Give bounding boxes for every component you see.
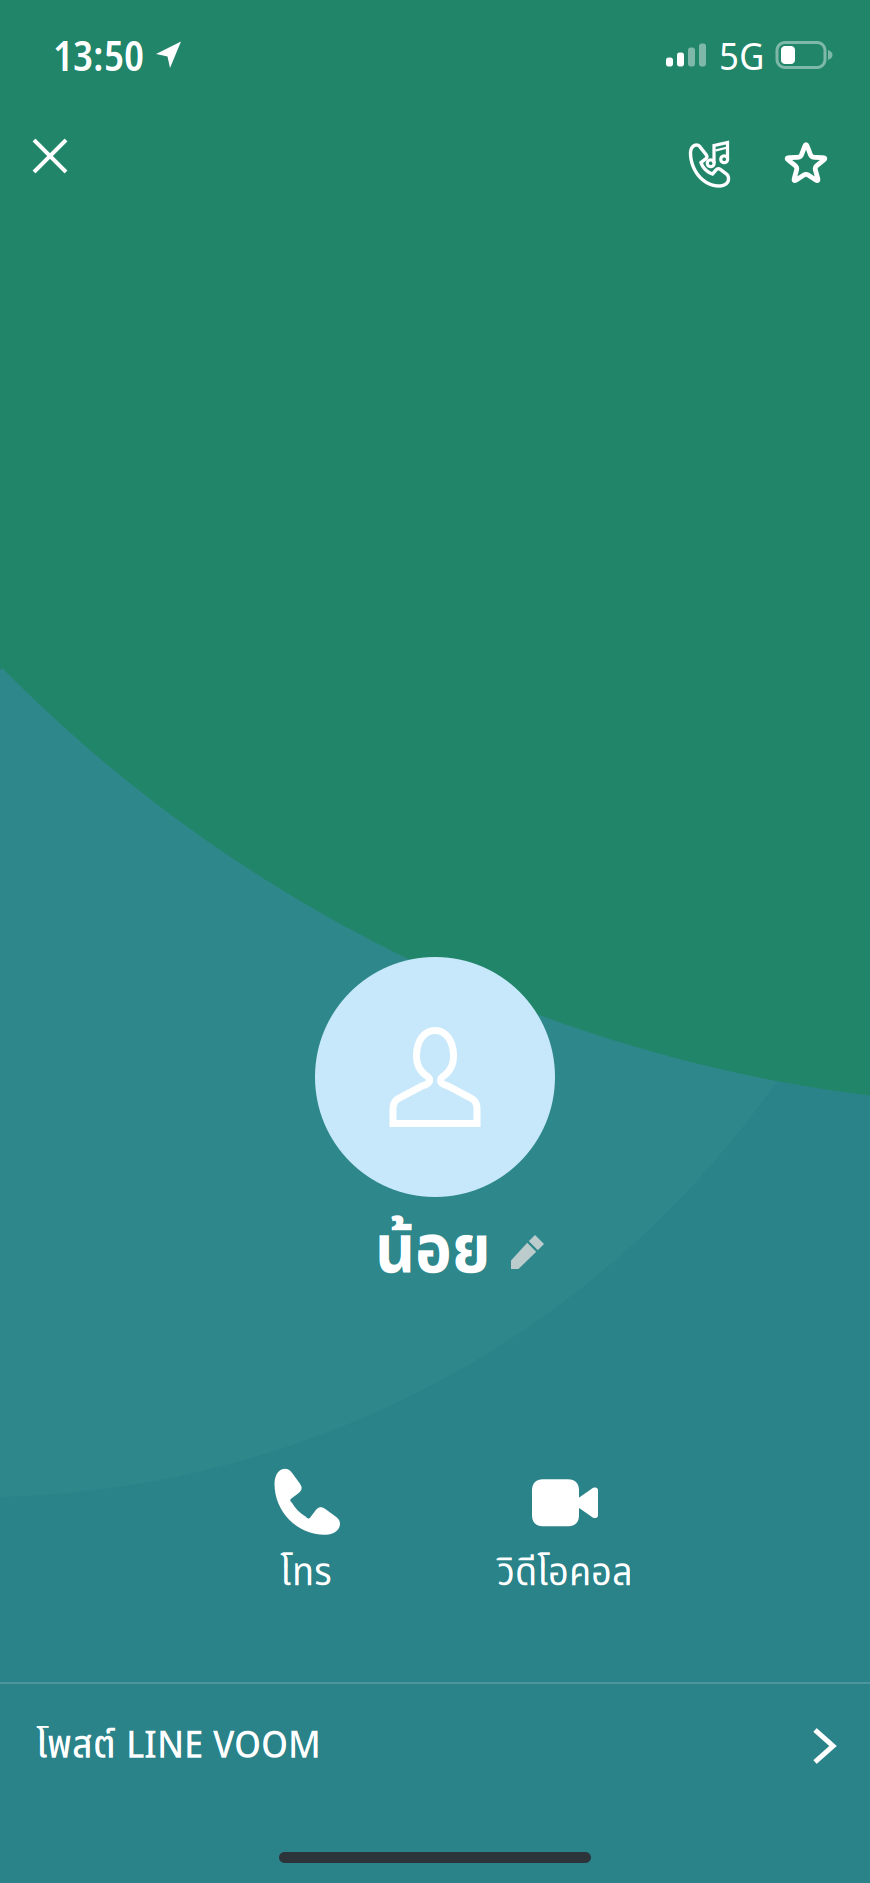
button[interactable]: โพสต์ LINE VOOM	[0, 1684, 870, 1808]
button[interactable]: โทร	[196, 1472, 416, 1602]
button[interactable]: Edit name	[330, 1216, 590, 1288]
staticText: โพสต์ LINE VOOM	[36, 1717, 321, 1775]
staticText: 13:50	[53, 27, 144, 83]
button[interactable]: วิดีโอคอล	[455, 1472, 675, 1602]
button[interactable]: Profile photo	[315, 957, 555, 1197]
button[interactable]: Close	[4, 110, 96, 202]
button[interactable]: Ringtone	[665, 119, 757, 211]
staticText: 5G	[719, 29, 764, 81]
staticText: น้อย	[375, 1202, 491, 1302]
button[interactable]: Add to favourites	[760, 117, 852, 209]
staticText: โทร	[280, 1543, 332, 1603]
staticText: วิดีโอคอล	[497, 1543, 633, 1603]
